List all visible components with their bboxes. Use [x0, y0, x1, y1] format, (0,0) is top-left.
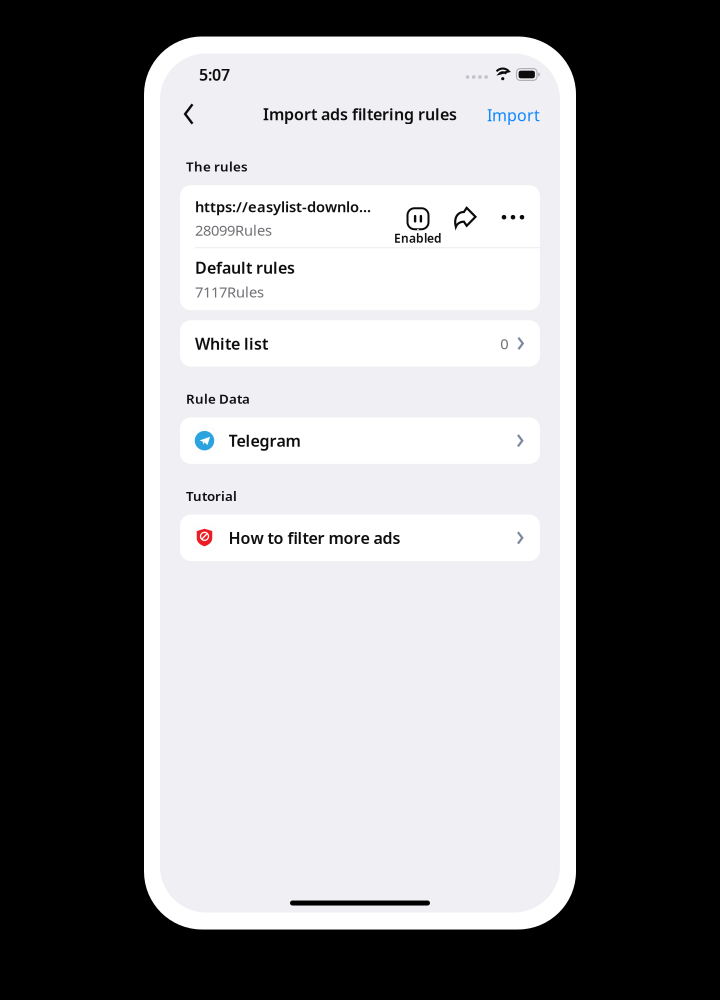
staticText: Import ads filtering rules	[263, 103, 457, 125]
staticText: 7117Rules	[195, 282, 264, 302]
staticText: The rules	[186, 157, 248, 175]
button[interactable]: Back	[169, 97, 209, 145]
staticText: Enabled	[394, 230, 442, 246]
button[interactable]: Share	[440, 185, 490, 247]
button[interactable]: How to filter more ads	[180, 515, 540, 561]
button[interactable]: Import	[487, 97, 540, 145]
staticText: 28099Rules	[195, 220, 272, 240]
staticText: 5:07	[199, 64, 230, 85]
staticText: How to filter more ads	[228, 527, 400, 548]
button[interactable]: More options	[490, 185, 536, 247]
staticText: Import	[487, 104, 540, 126]
staticText: 0	[500, 334, 508, 353]
staticText: Tutorial	[186, 487, 237, 505]
staticText: Default rules	[195, 257, 295, 278]
button[interactable]: Telegram	[180, 417, 540, 464]
staticText: Telegram	[228, 430, 300, 451]
staticText: https://easylist-downlo...	[195, 197, 371, 216]
button[interactable]: https://easylist-downlo...	[180, 185, 540, 247]
staticText: White list	[195, 333, 268, 354]
staticText: Rule Data	[186, 390, 250, 407]
button[interactable]: Default rules	[180, 248, 540, 310]
button[interactable]: White list	[180, 320, 540, 367]
button[interactable]: Enabled — pause rules	[396, 185, 440, 247]
